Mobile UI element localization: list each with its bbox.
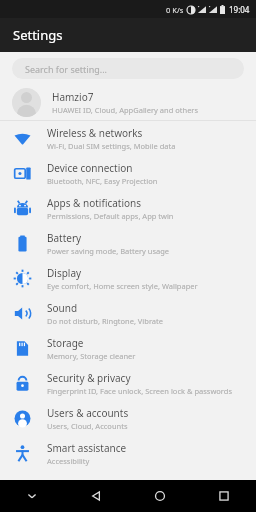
button[interactable]: Hide keyboard [0,480,64,512]
button[interactable]: Back [64,480,128,512]
staticText: HUAWEI ID, Cloud, AppGallery and others [52,105,199,115]
staticText: Apps & notifications [47,196,142,210]
button[interactable]: Security & privacy [0,366,256,401]
button[interactable]: Home [128,480,192,512]
staticText: 19:04 [229,4,250,15]
staticText: Smart assistance [47,441,127,455]
staticText: Wireless & networks [47,126,143,140]
staticText: Settings [13,26,63,44]
staticText: Security & privacy [47,371,131,385]
staticText: Memory, Storage cleaner [47,351,136,361]
staticText: Fingerprint ID, Face unlock, Screen lock… [47,386,232,396]
staticText: Storage [47,336,84,350]
button[interactable]: Battery [0,226,256,261]
button[interactable]: Sound [0,296,256,331]
staticText: Eye comfort, Home screen style, Wallpape… [47,281,198,291]
staticText: Hamzio7 [52,90,94,104]
staticText: Battery [47,231,82,245]
staticText: Wi-Fi, Dual SIM settings, Mobile data [47,141,176,151]
staticText: Accessibility [47,456,90,466]
staticText: Permissions, Default apps, App twin [47,211,174,221]
staticText: Do not disturb, Ringtone, Vibrate [47,316,164,326]
button[interactable]: Display [0,261,256,296]
button[interactable]: Device connection [0,156,256,191]
staticText: Device connection [47,161,133,175]
button[interactable]: Hamzio7 [0,84,256,120]
button[interactable]: Apps & notifications [0,191,256,226]
staticText: Users & accounts [47,406,129,420]
staticText: Search for setting... [25,63,107,75]
staticText: Display [47,266,82,280]
button[interactable]: Search for setting... [12,58,244,79]
staticText: Users, Cloud, Accounts [47,421,128,431]
button[interactable]: Smart assistance [0,436,256,471]
staticText: Bluetooth, NFC, Easy Projection [47,176,158,186]
button[interactable]: Recents [192,480,256,512]
button[interactable]: Storage [0,331,256,366]
button[interactable]: Users & accounts [0,401,256,436]
staticText: Power saving mode, Battery usage [47,246,170,256]
button[interactable]: Wireless & networks [0,121,256,156]
staticText: Sound [47,301,78,315]
staticText: 0 K/s [166,5,184,15]
